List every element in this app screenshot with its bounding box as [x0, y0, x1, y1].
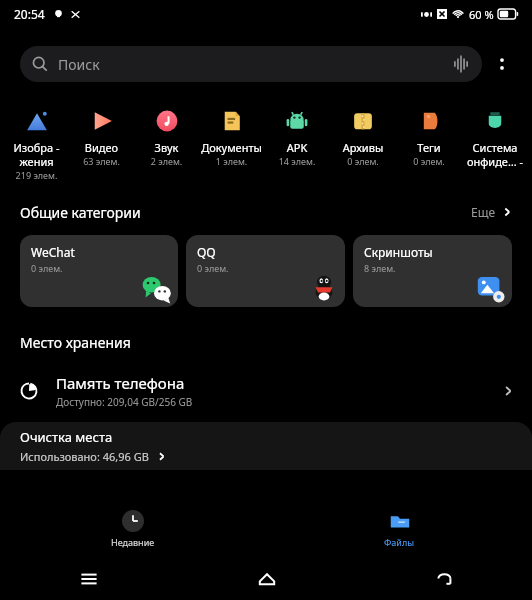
staticText: Использовано: 46,96 GB: [20, 449, 149, 464]
button[interactable]: Документы: [199, 104, 264, 171]
staticText: 60 %: [469, 7, 494, 22]
button[interactable]: Архивы: [330, 104, 396, 171]
staticText: 0 элем.: [330, 155, 396, 167]
staticText: Очистка места: [20, 428, 113, 446]
button[interactable]: Облачный диск: [0, 417, 532, 469]
staticText: APK: [264, 140, 330, 155]
other: Voice search: [452, 55, 470, 73]
button[interactable]: Система онфиде… -: [462, 104, 528, 173]
button[interactable]: More options: [482, 44, 522, 84]
staticText: 2 элем.: [134, 155, 199, 167]
staticText: Изобра - жения: [4, 140, 69, 169]
staticText: Память телефона: [56, 373, 185, 393]
staticText: 0 элем.: [31, 262, 63, 274]
staticText: QQ: [197, 244, 216, 260]
button[interactable]: Еще: [467, 200, 518, 224]
staticText: Видео: [69, 140, 134, 155]
button[interactable]: Изобра - жения: [4, 104, 69, 185]
staticText: Документы: [199, 140, 264, 155]
button[interactable]: APK: [264, 104, 330, 171]
staticText: Место хранения: [20, 333, 131, 352]
staticText: Архивы: [330, 140, 396, 155]
staticText: Общие категории: [20, 203, 141, 222]
button[interactable]: Файлы: [266, 500, 532, 558]
staticText: Недавние: [111, 536, 155, 548]
staticText: Теги: [396, 140, 462, 155]
staticText: WeChat: [31, 244, 75, 260]
staticText: Еще: [471, 204, 496, 220]
button[interactable]: QQ: [186, 235, 345, 307]
staticText: 63 элем.: [69, 155, 134, 167]
staticText: Звук: [134, 140, 199, 155]
button[interactable]: WeChat: [20, 235, 178, 307]
staticText: 14 элем.: [264, 155, 330, 167]
staticText: Облачный диск: [56, 433, 170, 453]
staticText: 0 элем.: [396, 155, 462, 167]
staticText: Скриншоты: [364, 244, 433, 260]
button[interactable]: Память телефона: [0, 365, 532, 417]
button[interactable]: Поиск: [20, 46, 482, 82]
staticText: Доступно: 209,04 GB/256 GB: [56, 395, 193, 409]
button[interactable]: Теги: [396, 104, 462, 171]
button[interactable]: Звук: [134, 104, 199, 171]
staticText: Система онфиде… -: [462, 140, 528, 169]
button[interactable]: Недавние: [0, 500, 266, 558]
button[interactable]: Видео: [69, 104, 134, 171]
staticText: 0 элем.: [197, 262, 229, 274]
button[interactable]: Recents: [0, 558, 178, 600]
staticText: Поиск: [58, 55, 100, 74]
staticText: 20:54: [14, 6, 45, 22]
staticText: Файлы: [384, 536, 415, 548]
staticText: 219 элем.: [4, 169, 69, 181]
button[interactable]: Скриншоты: [353, 235, 512, 307]
button[interactable]: Очистка места: [0, 422, 532, 470]
button[interactable]: Back: [355, 558, 532, 600]
staticText: 8 элем.: [364, 262, 396, 274]
button[interactable]: Home: [178, 558, 355, 600]
staticText: 1 элем.: [199, 155, 264, 167]
